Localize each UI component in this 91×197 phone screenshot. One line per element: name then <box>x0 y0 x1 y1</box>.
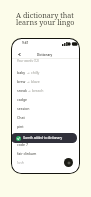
staticText: cadge <box>17 97 28 102</box>
staticText: → <box>27 80 30 84</box>
staticText: pint <box>17 124 24 129</box>
button[interactable]: lingo <box>12 131 79 140</box>
button[interactable]: Back <box>15 50 23 58</box>
staticText: 9:41 <box>22 41 29 45</box>
button[interactable]: pint <box>12 122 79 131</box>
staticText: breach <box>32 88 44 93</box>
staticText: code 7 <box>17 142 28 147</box>
staticText: Chat <box>17 115 25 120</box>
button[interactable]: lush <box>12 158 79 167</box>
staticText: Dictionary <box>37 53 53 57</box>
staticText: fair dinkum <box>17 151 37 156</box>
staticText: lush <box>17 160 25 165</box>
button[interactable]: brew <box>12 77 79 86</box>
staticText: brew <box>17 79 26 84</box>
button[interactable]: fair dinkum <box>12 149 79 158</box>
staticText: A dictionary that <box>16 10 74 20</box>
staticText: → <box>27 71 30 75</box>
staticText: Gareth added to dictionary <box>23 136 63 140</box>
staticText: sneak <box>17 88 27 93</box>
button[interactable]: session <box>12 104 79 113</box>
staticText: blaze <box>31 79 40 84</box>
button[interactable]: Gareth added to dictionary <box>12 133 77 143</box>
staticText: chilly <box>31 70 40 75</box>
staticText: baby <box>17 70 26 75</box>
button[interactable]: cadge <box>12 95 79 104</box>
staticText: learns your lingo <box>16 17 75 27</box>
button[interactable]: Chat <box>12 113 79 122</box>
button[interactable]: baby <box>12 68 79 77</box>
button[interactable]: sneak <box>12 86 79 95</box>
button[interactable]: Add word <box>64 158 73 167</box>
staticText: → <box>28 89 31 93</box>
button[interactable]: code 7 <box>12 140 79 149</box>
staticText: lingo <box>17 133 26 138</box>
staticText: session <box>17 106 30 111</box>
staticText: Your words (12) <box>17 59 39 63</box>
